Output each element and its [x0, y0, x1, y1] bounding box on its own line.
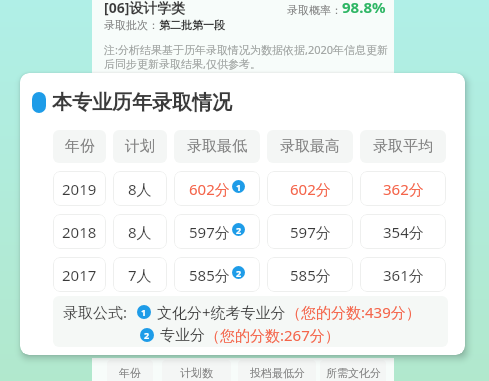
staticText: 585分 [189, 265, 230, 285]
button[interactable]: 录取最高 [267, 130, 353, 163]
staticText: （您的分数:267分） [205, 325, 340, 345]
staticText: 1 [141, 306, 147, 318]
staticText: 585分 [290, 265, 331, 285]
staticText: [06]设计学类 [104, 0, 186, 17]
staticText: 2018 [62, 222, 97, 242]
staticText: 录取公式: [63, 302, 128, 322]
staticText: 本专业历年录取情况 [52, 90, 232, 115]
staticText: 所需文化分 [326, 366, 381, 380]
staticText: 98.8% [342, 0, 386, 17]
staticText: 8人 [128, 222, 152, 242]
button[interactable]: 2017 [53, 257, 106, 292]
staticText: 2019 [62, 179, 97, 199]
staticText: 597分 [189, 222, 230, 242]
staticText: 361分 [383, 265, 424, 285]
button[interactable]: 投档最低分 [238, 360, 316, 381]
staticText: 2017 [62, 265, 97, 285]
button[interactable]: 2018 [53, 214, 106, 249]
staticText: 注:分析结果基于历年录取情况为数据依据,2020年信息更新后同步更新录取结果,仅… [104, 42, 396, 71]
button[interactable]: 计划数 [162, 360, 231, 381]
staticText: 602分 [189, 179, 230, 199]
staticText: 2 [144, 329, 150, 341]
staticText: 8人 [128, 179, 152, 199]
button[interactable]: 录取最低 [174, 130, 260, 163]
staticText: 年份 [65, 137, 95, 156]
staticText: 录取最低 [187, 137, 247, 156]
button[interactable]: 361分 [360, 257, 446, 292]
staticText: 文化分+统考专业分 [157, 302, 286, 322]
button[interactable]: 2019 [53, 171, 106, 206]
button[interactable]: 585分 [174, 257, 260, 292]
button[interactable]: 602分 [267, 171, 353, 206]
staticText: 专业分 [160, 326, 205, 345]
button[interactable]: 录取平均 [360, 130, 446, 163]
staticText: 597分 [290, 222, 331, 242]
button[interactable]: 8人 [113, 171, 167, 206]
button[interactable]: 7人 [113, 257, 167, 292]
staticText: 年份 [119, 366, 141, 380]
staticText: 录取批次：第二批第一段 [104, 18, 225, 32]
staticText: 602分 [290, 179, 331, 199]
button[interactable]: 597分 [174, 214, 260, 249]
staticText: 计划 [125, 137, 155, 156]
staticText: 录取平均 [373, 137, 433, 156]
button[interactable]: 354分 [360, 214, 446, 249]
staticText: 录取最高 [280, 137, 340, 156]
staticText: 2 [236, 224, 242, 236]
staticText: 2 [236, 267, 242, 279]
button[interactable]: 362分 [360, 171, 446, 206]
staticText: （您的分数:439分） [286, 302, 421, 322]
staticText: 1 [236, 181, 242, 193]
button[interactable]: 所需文化分 [320, 360, 386, 381]
staticText: 投档最低分 [250, 366, 305, 380]
button[interactable]: 年份 [53, 130, 106, 163]
button[interactable]: 8人 [113, 214, 167, 249]
staticText: 计划数 [180, 366, 213, 380]
button[interactable]: 计划 [113, 130, 167, 163]
staticText: 录取概率： [287, 3, 342, 17]
button[interactable]: 585分 [267, 257, 353, 292]
staticText: 354分 [383, 222, 424, 242]
button[interactable]: 602分 [174, 171, 260, 206]
button[interactable]: 597分 [267, 214, 353, 249]
staticText: 362分 [383, 179, 424, 199]
button[interactable]: 年份 [107, 360, 153, 381]
staticText: 7人 [128, 265, 152, 285]
